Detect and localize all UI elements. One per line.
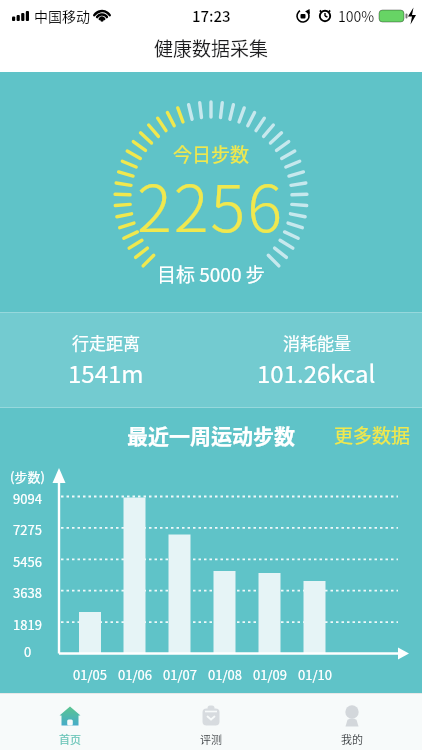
staticText: 消耗能量	[283, 330, 351, 355]
staticText: 01/05	[73, 665, 107, 684]
staticText: 最近一周运动步数	[127, 420, 295, 450]
staticText: 健康数据采集	[154, 34, 269, 62]
button[interactable]: 首页	[0, 694, 140, 750]
staticText: 101.26kcal	[257, 355, 376, 390]
button[interactable]: 更多数据	[334, 421, 411, 449]
staticText: 01/09	[253, 665, 287, 684]
staticText: 0	[24, 642, 32, 661]
staticText: 今日步数	[173, 140, 250, 168]
staticText: 100%	[338, 6, 375, 26]
staticText: 1819	[13, 615, 42, 634]
staticText: 目标 5000 步	[157, 260, 265, 288]
button[interactable]: 我的	[281, 694, 422, 750]
staticText: 3638	[13, 583, 42, 602]
staticText: (步数)	[10, 467, 45, 486]
staticText: 9094	[13, 489, 42, 508]
button[interactable]: 评测	[140, 694, 281, 750]
staticText: 17:23	[192, 5, 231, 27]
staticText: 01/06	[118, 665, 152, 684]
button[interactable]: 消耗能量	[211, 312, 422, 408]
staticText: 行走距离	[72, 330, 140, 355]
staticText: 中国移动	[34, 6, 90, 26]
button[interactable]: 行走距离	[0, 312, 211, 408]
staticText: 7275	[13, 520, 42, 539]
staticText: 01/07	[163, 665, 197, 684]
staticText: 2256	[137, 157, 285, 251]
staticText: 首页	[59, 731, 81, 747]
staticText: 01/08	[208, 665, 242, 684]
staticText: 我的	[341, 731, 363, 747]
staticText: 1541m	[68, 355, 144, 390]
staticText: 01/10	[298, 665, 332, 684]
staticText: 评测	[200, 731, 222, 747]
staticText: 5456	[13, 552, 42, 571]
